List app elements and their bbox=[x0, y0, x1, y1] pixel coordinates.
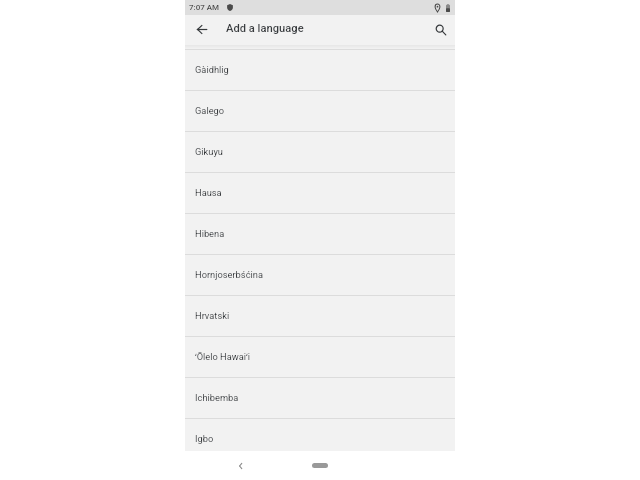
button[interactable]: Ichibemba bbox=[185, 378, 455, 418]
button[interactable]: Gàidhlig bbox=[185, 50, 455, 90]
staticText: Hibena bbox=[195, 228, 225, 239]
button[interactable]: Back bbox=[190, 17, 214, 41]
button[interactable]: Home bbox=[312, 463, 328, 468]
staticText: Hrvatski bbox=[195, 310, 230, 321]
staticText: Galego bbox=[195, 105, 225, 116]
staticText: 7:07 AM bbox=[189, 3, 220, 12]
button[interactable]: Igbo bbox=[185, 419, 455, 451]
button[interactable]: Hornjoserbśćina bbox=[185, 255, 455, 295]
staticText: Ichibemba bbox=[195, 392, 239, 403]
staticText: Gikuyu bbox=[195, 146, 223, 157]
staticText: ʻŌlelo Hawaiʻi bbox=[195, 350, 250, 363]
button[interactable]: Search bbox=[429, 18, 453, 42]
button[interactable]: Back bbox=[228, 454, 252, 478]
button[interactable]: Hrvatski bbox=[185, 296, 455, 336]
staticText: Gàidhlig bbox=[195, 64, 229, 75]
staticText: Hausa bbox=[195, 187, 222, 198]
button[interactable]: Hausa bbox=[185, 173, 455, 213]
button[interactable]: Galego bbox=[185, 91, 455, 131]
staticText: Igbo bbox=[195, 433, 214, 444]
staticText: Hornjoserbśćina bbox=[195, 269, 263, 280]
staticText: Add a language bbox=[226, 22, 304, 35]
button[interactable]: ʻŌlelo Hawaiʻi bbox=[185, 337, 455, 377]
button[interactable]: Hibena bbox=[185, 214, 455, 254]
button[interactable]: Gikuyu bbox=[185, 132, 455, 172]
